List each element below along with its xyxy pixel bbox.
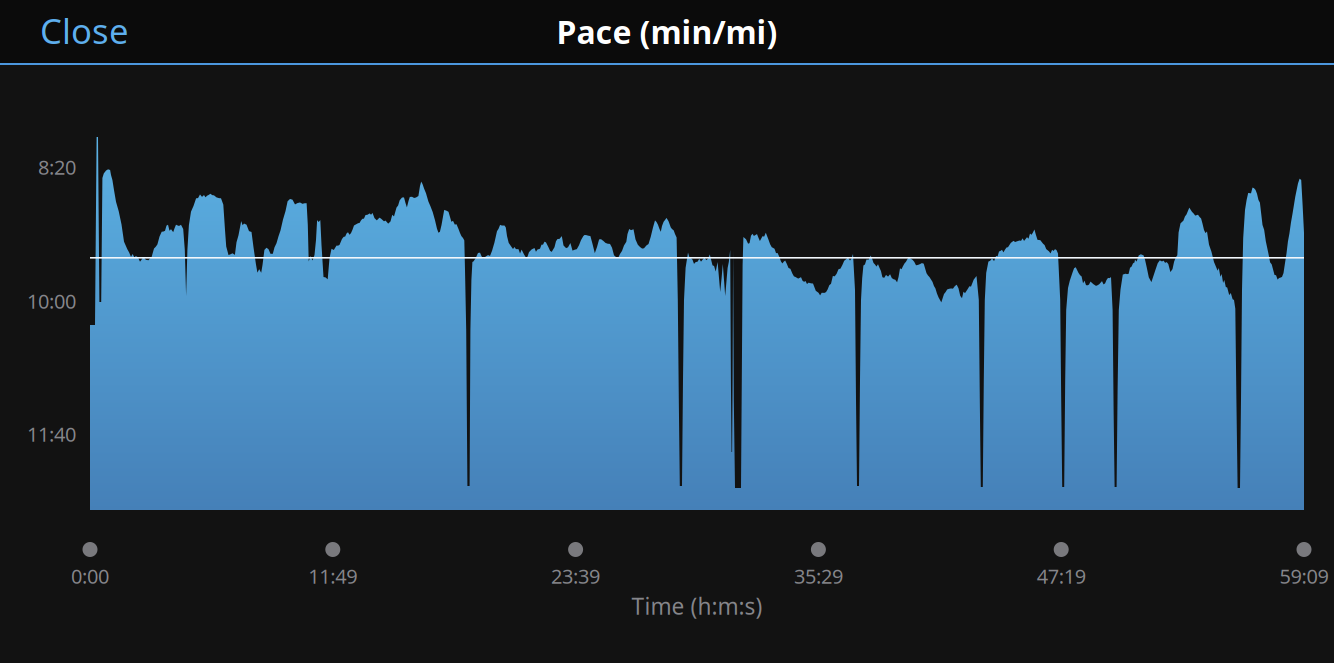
staticText: 10:00 [27, 288, 76, 314]
staticText: 11:40 [27, 421, 76, 447]
button[interactable]: Close [0, 0, 170, 61]
staticText: 35:29 [794, 563, 843, 589]
staticText: Pace (min/mi) [556, 10, 777, 53]
staticText: 23:39 [551, 563, 600, 589]
staticText: 0:00 [71, 563, 109, 589]
staticText: 59:09 [1279, 563, 1328, 589]
staticText: Time (h:m:s) [631, 591, 762, 621]
staticText: Close [40, 7, 129, 53]
staticText: 11:49 [308, 563, 357, 589]
staticText: 8:20 [38, 154, 76, 180]
staticText: 47:19 [1037, 563, 1086, 589]
